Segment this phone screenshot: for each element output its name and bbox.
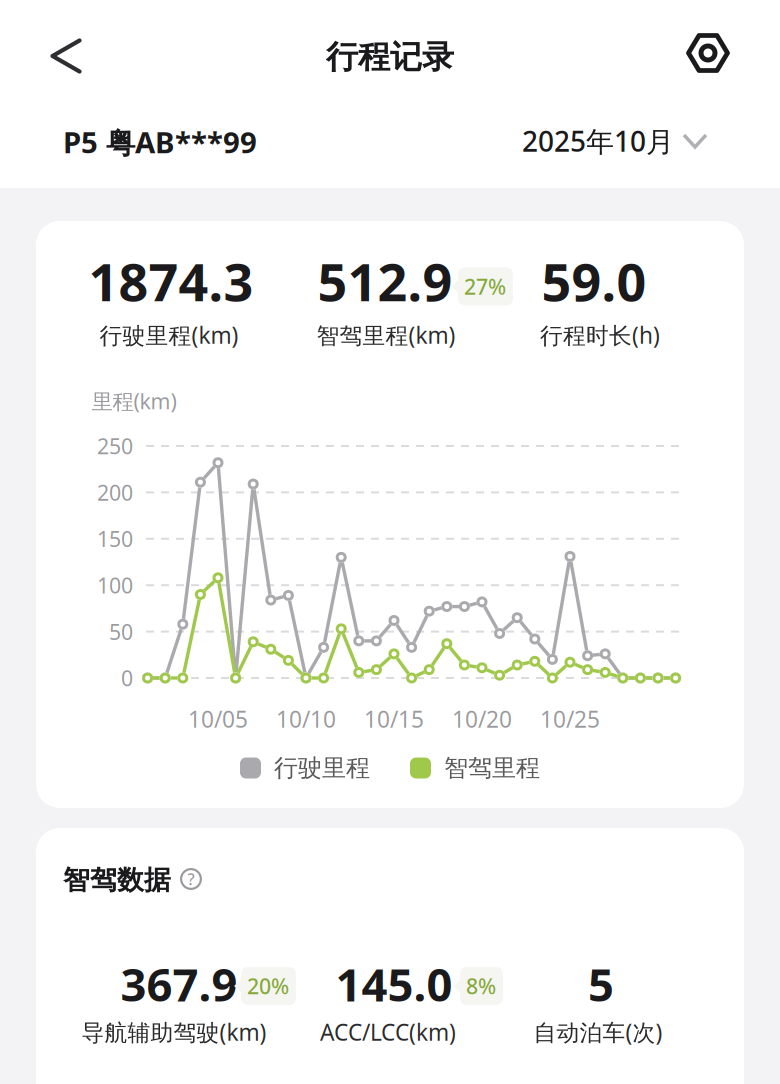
staticText: 367.9 <box>120 954 237 1014</box>
staticText: 2025年10月 <box>522 122 674 160</box>
staticText: 20% <box>247 972 289 1000</box>
staticText: 10/20 <box>452 704 512 734</box>
staticText: 行程时长(h) <box>540 320 660 350</box>
staticText: 导航辅助驾驶(km) <box>81 1017 266 1047</box>
staticText: 自动泊车(次) <box>533 1017 662 1047</box>
button[interactable]: Back <box>42 30 89 81</box>
staticText: 50 <box>109 617 133 646</box>
staticText: 智驾数据 <box>63 864 171 896</box>
staticText: 10/10 <box>276 704 336 734</box>
staticText: 10/25 <box>540 704 600 734</box>
staticText: 5 <box>588 954 614 1014</box>
staticText: ? <box>187 868 194 890</box>
button[interactable]: Help <box>174 862 208 896</box>
staticText: 行驶里程(km) <box>99 320 238 350</box>
staticText: 150 <box>97 525 133 553</box>
staticText: 智驾里程 <box>444 753 540 783</box>
staticText: 10/15 <box>364 704 424 734</box>
staticText: 8% <box>466 972 496 1000</box>
staticText: 512.9 <box>317 246 452 316</box>
staticText: P5 粤AB***99 <box>63 122 257 161</box>
button[interactable]: Settings <box>680 27 735 78</box>
staticText: 100 <box>97 571 133 599</box>
staticText: 智驾里程(km) <box>316 320 455 350</box>
staticText: 145.0 <box>335 954 452 1014</box>
staticText: 行驶里程 <box>274 753 370 783</box>
staticText: 10/05 <box>188 704 248 734</box>
staticText: 250 <box>97 432 133 460</box>
button[interactable]: 2025年10月 <box>522 122 706 160</box>
staticText: 27% <box>464 272 506 301</box>
staticText: ACC/LCC(km) <box>320 1017 456 1047</box>
staticText: 里程(km) <box>91 387 176 415</box>
staticText: 0 <box>121 664 133 692</box>
staticText: 59.0 <box>541 246 646 316</box>
staticText: 200 <box>97 478 133 506</box>
staticText: 1874.3 <box>88 246 253 316</box>
staticText: 行程记录 <box>326 37 454 77</box>
